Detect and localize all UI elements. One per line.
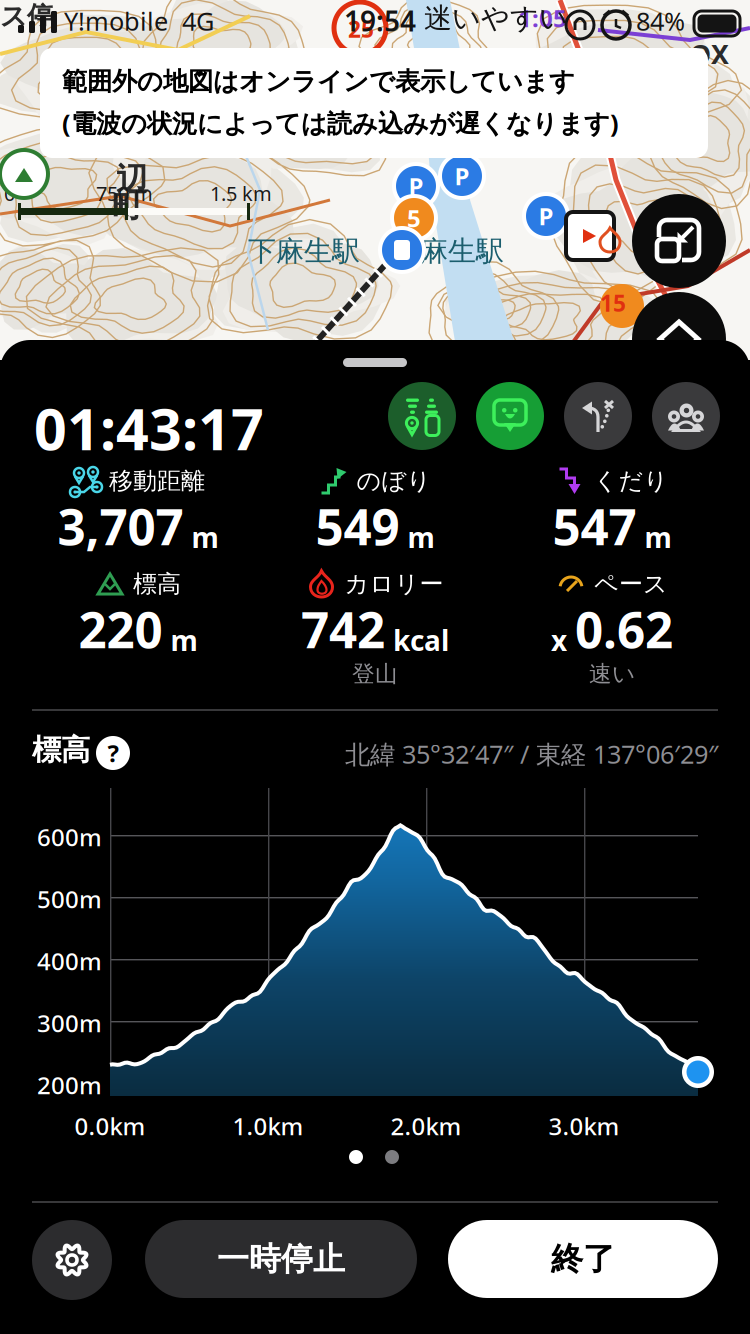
- staticText: 300m: [37, 1007, 102, 1039]
- button[interactable]: グループ: [652, 382, 720, 450]
- staticText: Y!mobile 4G: [64, 4, 214, 38]
- staticText: のぼり: [356, 466, 431, 496]
- staticText: kcal: [393, 622, 449, 659]
- button[interactable]: 位置を共有: [388, 382, 456, 450]
- staticText: P: [454, 160, 469, 192]
- staticText: OX: [690, 36, 729, 71]
- staticText: 25: [348, 14, 374, 44]
- staticText: x: [551, 622, 567, 659]
- staticText: 200m: [37, 1069, 102, 1101]
- button[interactable]: チャット: [476, 382, 544, 450]
- staticText: 750 m: [96, 180, 153, 207]
- staticText: ?: [107, 737, 118, 769]
- staticText: 547: [552, 493, 636, 559]
- staticText: 15: [600, 288, 626, 318]
- staticText: 3,707: [57, 493, 183, 559]
- staticText: 終了: [551, 1239, 615, 1279]
- staticText: 登山: [352, 660, 398, 688]
- button[interactable]: 設定: [32, 1220, 112, 1300]
- button[interactable]: レイヤー: [632, 292, 726, 386]
- staticText: m: [644, 519, 671, 556]
- staticText: 迷いやすい: [424, 1, 568, 35]
- staticText: 400m: [37, 945, 102, 977]
- staticText: 一時停止: [217, 1239, 345, 1279]
- staticText: 0.62: [575, 596, 673, 662]
- button[interactable]: 終了: [448, 1220, 718, 1298]
- staticText: 北緯 35°32′47″ / 東経 137°06′29″: [345, 737, 718, 771]
- staticText: P: [538, 200, 553, 232]
- staticText: 2.0km: [390, 1110, 461, 1142]
- staticText: 19:54: [344, 2, 416, 39]
- staticText: (電波の状況によっては読み込みが遅くなります): [62, 106, 619, 140]
- staticText: 84%: [636, 4, 685, 38]
- staticText: 600m: [37, 821, 102, 853]
- staticText: 下麻生駅: [248, 234, 360, 268]
- staticText: 麻生駅: [420, 234, 504, 268]
- staticText: 速い: [589, 660, 635, 688]
- staticText: 辺: [116, 160, 148, 199]
- staticText: 標高: [133, 569, 181, 599]
- staticText: 3.0km: [548, 1110, 619, 1142]
- staticText: m: [170, 622, 197, 659]
- staticText: 5: [407, 202, 421, 234]
- staticText: P: [408, 170, 423, 202]
- staticText: ペース: [594, 569, 668, 599]
- staticText: m: [191, 519, 218, 556]
- staticText: 移動距離: [109, 466, 205, 496]
- button[interactable]: ルート変更: [564, 382, 632, 450]
- staticText: 町: [112, 186, 144, 225]
- staticText: 500m: [37, 883, 102, 915]
- staticText: ス停: [0, 0, 54, 33]
- staticText: 0: [4, 180, 15, 207]
- button[interactable]: 地図を縮小: [632, 194, 726, 288]
- staticText: くだり: [593, 466, 668, 496]
- staticText: 0.0km: [74, 1110, 145, 1142]
- staticText: カロリー: [344, 569, 443, 599]
- staticText: 549: [315, 493, 399, 559]
- staticText: 標高: [32, 732, 90, 768]
- staticText: 1:05: [518, 2, 567, 34]
- staticText: m: [407, 519, 434, 556]
- staticText: 1.5 km: [210, 180, 272, 207]
- staticText: 742: [301, 596, 385, 662]
- button[interactable]: 一時停止: [145, 1220, 417, 1298]
- staticText: 01:43:17: [34, 390, 264, 466]
- staticText: 220: [78, 596, 162, 662]
- staticText: 1.0km: [232, 1110, 303, 1142]
- staticText: 範囲外の地図はオンラインで表示しています: [62, 66, 575, 97]
